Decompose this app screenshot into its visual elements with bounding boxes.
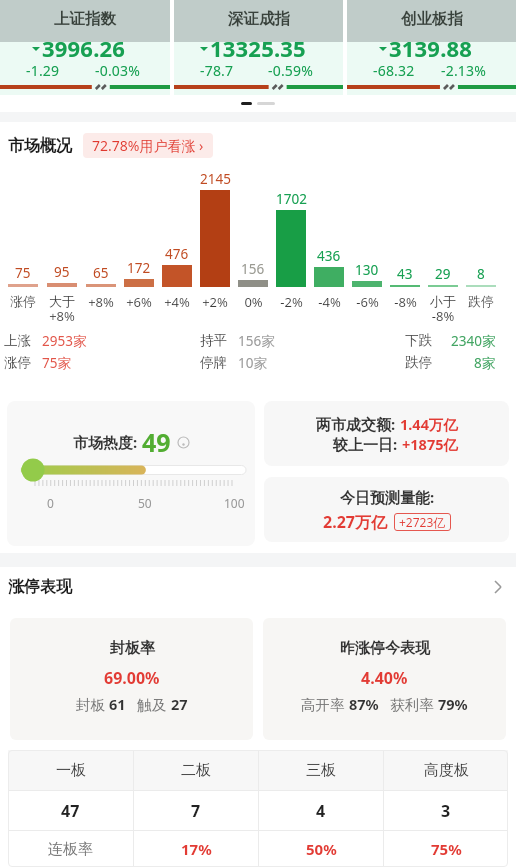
button[interactable]: 72.78%用户看涨 › bbox=[83, 133, 213, 158]
staticText: -68.32 bbox=[373, 61, 415, 80]
staticText: 2340家 bbox=[451, 332, 496, 350]
staticText: +1875亿 bbox=[402, 434, 458, 454]
staticText: 跌停 bbox=[468, 293, 494, 309]
button[interactable]: 连板率 bbox=[8, 831, 133, 867]
staticText: 61 bbox=[109, 694, 126, 714]
button[interactable]: 深证成指 bbox=[174, 0, 343, 95]
staticText: 2.27万亿 bbox=[323, 511, 387, 533]
staticText: 79% bbox=[438, 694, 468, 714]
staticText: 1702 bbox=[276, 190, 307, 208]
staticText: 65 bbox=[93, 264, 109, 282]
staticText: 触及 bbox=[126, 694, 171, 714]
button[interactable]: 两市成交额: bbox=[264, 401, 509, 466]
button[interactable]: 75% bbox=[384, 831, 508, 867]
staticText: 50 bbox=[138, 495, 152, 511]
button[interactable]: 今日预测量能: bbox=[264, 477, 509, 542]
staticText: 上涨 bbox=[4, 332, 31, 349]
staticText: 连板率 bbox=[48, 840, 93, 859]
staticText: 8 bbox=[477, 265, 485, 283]
staticText: 7 bbox=[191, 800, 201, 822]
staticText: 停牌 bbox=[200, 354, 227, 371]
staticText: 小于 -8% bbox=[430, 293, 456, 325]
button[interactable]: 创业板指 bbox=[347, 0, 516, 95]
staticText: 3 bbox=[441, 800, 451, 822]
staticText: -78.7 bbox=[200, 61, 234, 80]
staticText: 43 bbox=[397, 265, 413, 283]
staticText: 69.00% bbox=[104, 667, 160, 689]
staticText: -0.59% bbox=[268, 61, 314, 80]
staticText: 三板 bbox=[306, 761, 336, 780]
staticText: 两市成交额: bbox=[316, 414, 400, 434]
staticText: 0 bbox=[47, 495, 54, 511]
staticText: 市场概况 bbox=[8, 136, 72, 156]
staticText: 4.40% bbox=[361, 667, 408, 689]
staticText: 持平 bbox=[200, 332, 227, 349]
staticText: -1.29 bbox=[26, 61, 60, 80]
staticText: 2145 bbox=[200, 170, 231, 188]
staticText: -2.13% bbox=[441, 61, 487, 80]
staticText: 上证指数 bbox=[54, 9, 116, 29]
button[interactable]: 一板 bbox=[8, 750, 133, 790]
staticText: 29 bbox=[435, 265, 451, 283]
staticText: 1.44万亿 bbox=[400, 414, 458, 434]
staticText: +8% bbox=[88, 293, 114, 311]
staticText: 13325.35 bbox=[210, 33, 306, 63]
staticText: 49 bbox=[142, 425, 171, 459]
staticText: 27 bbox=[171, 694, 188, 714]
staticText: 4 bbox=[316, 800, 326, 822]
staticText: +2% bbox=[202, 293, 228, 311]
staticText: -0.03% bbox=[95, 61, 141, 80]
staticText: -6% bbox=[356, 293, 379, 311]
button[interactable]: 47 bbox=[8, 791, 133, 830]
staticText: 72.78%用户看涨 › bbox=[92, 136, 204, 155]
staticText: 创业板指 bbox=[401, 9, 463, 29]
staticText: 10家 bbox=[238, 354, 267, 372]
button[interactable]: 4 bbox=[259, 791, 383, 830]
staticText: 下跌 bbox=[405, 332, 432, 349]
button[interactable]: 17% bbox=[134, 831, 258, 867]
button[interactable]: 二板 bbox=[134, 750, 258, 790]
button[interactable]: 昨涨停今表现 bbox=[263, 618, 506, 740]
button[interactable]: 50% bbox=[259, 831, 383, 867]
staticText: -2% bbox=[280, 293, 303, 311]
staticText: 75 bbox=[15, 264, 31, 282]
staticText: 3996.26 bbox=[42, 33, 126, 63]
staticText: -8% bbox=[394, 293, 417, 311]
staticText: 130 bbox=[355, 261, 379, 279]
staticText: 2953家 bbox=[42, 332, 87, 350]
button[interactable]: 市场热度: bbox=[7, 401, 255, 546]
button[interactable]: 7 bbox=[134, 791, 258, 830]
staticText: 涨停表现 bbox=[8, 577, 72, 597]
staticText: 476 bbox=[165, 245, 189, 263]
button[interactable]: 高度板 bbox=[384, 750, 508, 790]
button[interactable]: 三板 bbox=[259, 750, 383, 790]
staticText: 436 bbox=[317, 247, 341, 265]
staticText: 涨停 bbox=[10, 293, 36, 309]
staticText: 0% bbox=[244, 293, 263, 311]
staticText: +4% bbox=[164, 293, 190, 311]
staticText: 二板 bbox=[181, 761, 211, 780]
staticText: 3139.88 bbox=[389, 33, 473, 63]
staticText: 95 bbox=[54, 263, 70, 281]
staticText: 封板率 bbox=[110, 639, 155, 658]
staticText: 深证成指 bbox=[228, 9, 290, 29]
staticText: 昨涨停今表现 bbox=[340, 639, 430, 658]
button[interactable]: 涨停表现 bbox=[8, 577, 502, 597]
staticText: 高度板 bbox=[424, 761, 469, 780]
staticText: +6% bbox=[126, 293, 152, 311]
staticText: 75家 bbox=[42, 354, 71, 372]
staticText: 一板 bbox=[56, 761, 86, 780]
button[interactable]: 上证指数 bbox=[0, 0, 170, 95]
staticText: 47 bbox=[61, 800, 80, 822]
staticText: 156家 bbox=[238, 332, 275, 350]
staticText: 今日预测量能: bbox=[340, 487, 435, 507]
staticText: +2723亿 bbox=[399, 514, 446, 530]
button[interactable]: 封板率 bbox=[10, 618, 253, 740]
staticText: 50% bbox=[306, 839, 337, 859]
staticText: 17% bbox=[181, 839, 212, 859]
staticText: 跌停 bbox=[405, 354, 432, 371]
staticText: 封板 bbox=[76, 694, 109, 714]
button[interactable]: 3 bbox=[384, 791, 508, 830]
staticText: -4% bbox=[318, 293, 341, 311]
staticText: 156 bbox=[241, 260, 265, 278]
